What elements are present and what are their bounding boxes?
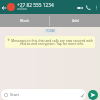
button[interactable]: Start	[1, 89, 86, 100]
button[interactable]: TODAY	[44, 29, 57, 33]
button[interactable]: Messages to this chat and calls are now …	[5, 36, 95, 48]
button[interactable]: More options	[93, 4, 100, 11]
button[interactable]: Block	[0, 14, 49, 27]
button[interactable]: Back	[1, 5, 6, 10]
button[interactable]: Send	[88, 90, 98, 100]
staticText: +27 82 555 1234	[17, 2, 54, 9]
staticText: Add	[72, 18, 79, 23]
button[interactable]: Add	[50, 14, 100, 27]
button[interactable]: Voice call	[84, 3, 93, 12]
staticText: Block	[20, 18, 30, 23]
button[interactable]: Profile photo	[7, 3, 15, 11]
staticText: TODAY	[46, 29, 55, 33]
button[interactable]: Video call	[75, 3, 84, 12]
button[interactable]: Attach	[79, 92, 85, 98]
staticText: Messages to this chat and calls are now …	[11, 38, 93, 46]
staticText: Start	[10, 92, 19, 97]
staticText: online	[17, 6, 27, 11]
